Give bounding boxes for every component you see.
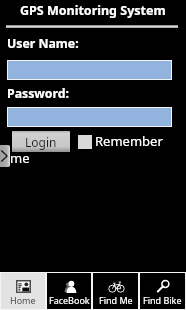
staticText: Remember: [95, 132, 163, 150]
staticText: Find Me: [99, 294, 133, 306]
button[interactable]: FaceBook: [47, 273, 91, 309]
staticText: Home: [10, 294, 36, 306]
button[interactable]: Login: [12, 131, 70, 152]
staticText: User Name:: [7, 35, 79, 52]
button[interactable]: Home: [1, 273, 45, 309]
staticText: Login: [25, 134, 57, 150]
button[interactable]: Open panel: [0, 145, 10, 167]
button[interactable]: Find Me: [93, 273, 138, 309]
staticText: me: [10, 149, 30, 167]
staticText: Password:: [7, 85, 70, 102]
staticText: GPS Monitoring System: [20, 2, 166, 19]
staticText: Find Bike: [143, 294, 182, 306]
button[interactable]: Find Bike: [140, 273, 185, 309]
staticText: FaceBook: [49, 294, 90, 306]
